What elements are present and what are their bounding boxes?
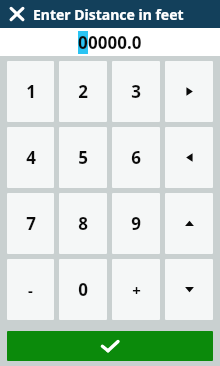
button[interactable]: 7: [7, 193, 54, 254]
staticText: 3: [131, 80, 141, 103]
staticText: 4: [26, 146, 36, 169]
staticText: 2: [78, 80, 88, 103]
button[interactable]: 9: [112, 193, 160, 254]
staticText: 0000.0: [88, 31, 142, 54]
staticText: 8: [78, 212, 88, 235]
button[interactable]: 6: [112, 127, 160, 188]
button[interactable]: Move cursor right: [165, 61, 213, 122]
staticText: Enter Distance in feet: [33, 5, 184, 24]
button[interactable]: -: [7, 259, 54, 320]
button[interactable]: +: [112, 259, 160, 320]
staticText: 1: [26, 80, 36, 103]
staticText: 0: [78, 278, 88, 301]
button[interactable]: Confirm: [7, 331, 213, 361]
button[interactable]: Decrement: [165, 259, 213, 320]
button[interactable]: 1: [7, 61, 54, 122]
button[interactable]: 2: [59, 61, 107, 122]
staticText: 7: [26, 212, 36, 235]
staticText: 9: [131, 212, 141, 235]
button[interactable]: Move cursor left: [165, 127, 213, 188]
staticText: -: [28, 280, 33, 300]
button[interactable]: 0: [0, 28, 220, 56]
button[interactable]: 5: [59, 127, 107, 188]
staticText: 6: [131, 146, 141, 169]
button[interactable]: Increment: [165, 193, 213, 254]
button[interactable]: 8: [59, 193, 107, 254]
staticText: 0: [78, 31, 88, 54]
button[interactable]: Close: [5, 2, 29, 26]
button[interactable]: 3: [112, 61, 160, 122]
staticText: 5: [78, 146, 88, 169]
button[interactable]: 0: [59, 259, 107, 320]
button[interactable]: 4: [7, 127, 54, 188]
staticText: +: [132, 280, 141, 300]
